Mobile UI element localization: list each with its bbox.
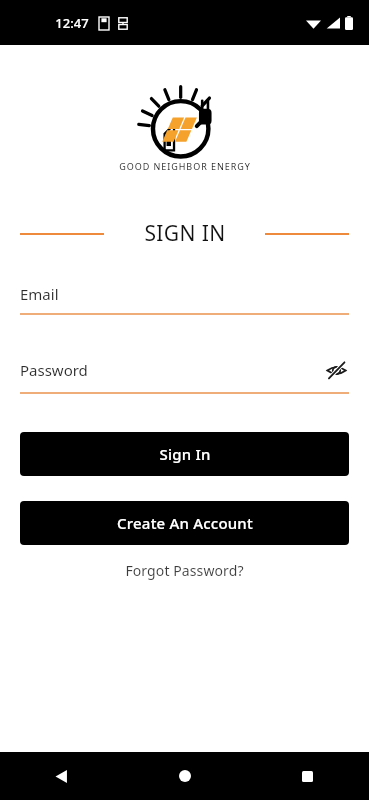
staticText: Sign In [159,444,211,464]
staticText: GOOD NEIGHBOR ENERGY [119,160,251,172]
button[interactable]: Show password [323,357,349,383]
button[interactable]: Recent apps [246,752,369,800]
staticText: Email [20,284,59,304]
staticText: SIGN IN [144,219,226,248]
button[interactable]: Forgot Password? [117,558,252,583]
staticText: 12:47 [55,14,89,32]
button[interactable]: Email [20,284,349,315]
button[interactable]: Create An Account [20,501,349,545]
button[interactable]: Home [123,752,246,800]
button[interactable]: Sign In [20,432,349,476]
button[interactable]: Password [20,357,349,394]
staticText: Password [20,360,88,380]
button[interactable]: Back [0,752,123,800]
staticText: Forgot Password? [125,561,244,580]
staticText: Create An Account [117,513,253,533]
